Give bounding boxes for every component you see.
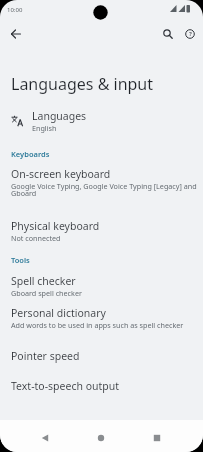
staticText: English	[32, 123, 57, 133]
button[interactable]: Spell checker	[0, 274, 203, 298]
staticText: Pointer speed	[11, 349, 80, 363]
staticText: Languages	[32, 109, 87, 123]
staticText: Gboard spell checker	[11, 288, 82, 298]
staticText: Text-to-speech output	[11, 379, 120, 393]
button[interactable]: Physical keyboard	[0, 219, 203, 243]
button[interactable]: Pointer speed	[0, 349, 203, 363]
staticText: Languages & input	[11, 73, 154, 95]
button[interactable]	[147, 428, 167, 448]
staticText: Keyboards	[11, 149, 50, 159]
button[interactable]: Languages	[0, 109, 203, 133]
button[interactable]	[35, 428, 55, 448]
button[interactable]	[159, 25, 177, 43]
staticText: 10:00	[7, 6, 23, 14]
staticText: Tools	[11, 255, 30, 265]
staticText: On-screen keyboard	[11, 167, 111, 181]
button[interactable]	[7, 25, 25, 43]
staticText: Spell checker	[11, 274, 76, 288]
staticText: Physical keyboard	[11, 219, 100, 233]
staticText: Personal dictionary	[11, 306, 106, 320]
button[interactable]: ?	[181, 25, 199, 43]
staticText: Add words to be used in apps such as spe…	[11, 320, 184, 330]
staticText: Google Voice Typing, Google Voice Typing…	[11, 181, 197, 198]
staticText: ?	[189, 30, 192, 38]
button[interactable]	[91, 428, 111, 448]
button[interactable]: On-screen keyboard	[0, 167, 203, 198]
button[interactable]: Text-to-speech output	[0, 379, 203, 393]
button[interactable]: Personal dictionary	[0, 306, 203, 330]
staticText: Not connected	[11, 233, 61, 243]
